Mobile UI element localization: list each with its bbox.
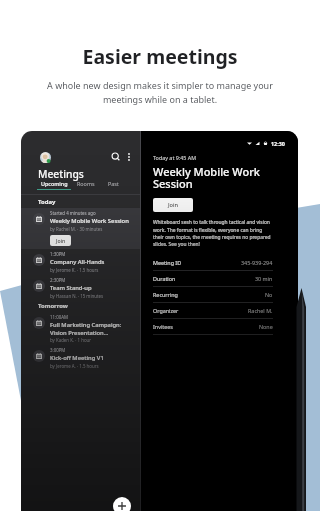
staticText: 1:30PM (50, 251, 66, 257)
button[interactable]: 2:30PM (21, 275, 140, 301)
staticText: by Jerome K. · 1.5 hours (50, 267, 99, 273)
button[interactable]: Started 4 minutes ago (21, 208, 140, 249)
staticText: Join (56, 237, 66, 244)
staticText: by Kaden K. · 1 hour (50, 337, 92, 343)
staticText: 3:00PM (50, 347, 66, 353)
button[interactable]: Join (50, 235, 71, 246)
staticText: 2:30PM (50, 277, 66, 283)
staticText: Rachel M. (248, 307, 273, 314)
staticText: Tomorrow (38, 302, 68, 310)
button[interactable]: Past (108, 180, 119, 187)
button[interactable]: Rooms (77, 180, 95, 187)
button[interactable]: Organizer (153, 303, 273, 319)
staticText: Organizer (153, 307, 179, 314)
staticText: Weekly Mobile Work Session (50, 217, 129, 225)
staticText: Weekly Mobile Work Session (153, 164, 273, 191)
staticText: by Hassan N. · 15 minutes (50, 293, 104, 299)
staticText: 30 min (255, 275, 273, 282)
staticText: Invitees (153, 323, 173, 330)
button[interactable]: 11:00AM (21, 312, 140, 345)
staticText: 12:30 (271, 140, 285, 147)
staticText: Today (38, 198, 56, 206)
staticText: Duration (153, 275, 176, 282)
staticText: Team Stand-up (50, 284, 92, 292)
button[interactable]: Meeting ID (153, 255, 273, 271)
staticText: Meetings (38, 167, 84, 181)
staticText: Easier meetings (82, 43, 238, 70)
staticText: A whole new design makes it simpler to m… (42, 79, 278, 105)
staticText: Upcoming (41, 180, 68, 187)
staticText: Join (168, 201, 179, 209)
button[interactable]: Upcoming (37, 180, 71, 190)
button[interactable]: Duration (153, 271, 273, 287)
staticText: by Rachel M. · 30 minutes (50, 226, 103, 232)
button[interactable]: Recurring (153, 287, 273, 303)
button[interactable]: Search (110, 151, 122, 163)
staticText: Recurring (153, 291, 178, 298)
button[interactable]: 3:00PM (21, 345, 140, 371)
staticText: Whiteboard sesh to talk through tactical… (153, 219, 273, 247)
staticText: No (265, 291, 273, 298)
staticText: Kick-off Meeting V1 (50, 354, 104, 362)
staticText: Meeting ID (153, 259, 182, 266)
staticText: by Jerome A. · 1.5 hours (50, 363, 99, 369)
staticText: None (259, 323, 273, 330)
staticText: Full Marketing Campaign: Vision Presenta… (50, 321, 139, 336)
staticText: 11:00AM (50, 314, 69, 320)
button[interactable]: 1:30PM (21, 249, 140, 275)
button[interactable]: Join (153, 198, 193, 212)
staticText: Company All-Hands (50, 258, 105, 266)
staticText: Started 4 minutes ago (50, 210, 96, 216)
staticText: 345-939-294 (241, 259, 273, 266)
staticText: Today at 9:45 AM (153, 154, 197, 161)
button[interactable]: More options (123, 151, 135, 163)
button[interactable]: Account (39, 151, 51, 163)
button[interactable]: Invitees (153, 319, 273, 335)
button[interactable]: New meeting (113, 497, 131, 511)
